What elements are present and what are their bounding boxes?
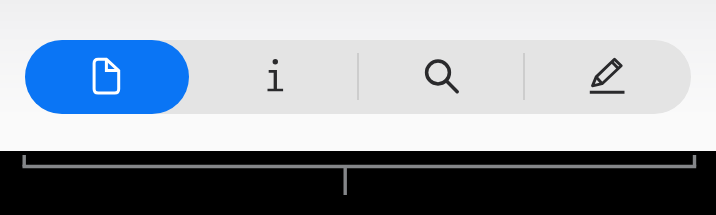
button[interactable]: Info [191,40,358,114]
button[interactable]: Edit [524,40,691,114]
button[interactable]: Document [25,40,189,114]
button[interactable]: Search [358,40,524,114]
